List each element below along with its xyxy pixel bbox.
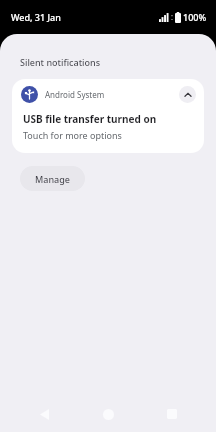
button[interactable]: Android System (12, 79, 204, 153)
button[interactable]: Recent apps (152, 399, 192, 429)
button[interactable]: Manage (20, 166, 85, 191)
button[interactable]: Collapse notification (179, 86, 196, 103)
staticText: 100% (183, 11, 207, 23)
staticText: Android System (45, 89, 105, 100)
button[interactable]: Home (88, 399, 128, 429)
staticText: Wed, 31 Jan (11, 11, 61, 23)
staticText: Silent notifications (20, 56, 101, 68)
staticText: Touch for more options (23, 129, 122, 141)
staticText: Manage (35, 173, 70, 185)
staticText: USB file transfer turned on (23, 112, 157, 126)
